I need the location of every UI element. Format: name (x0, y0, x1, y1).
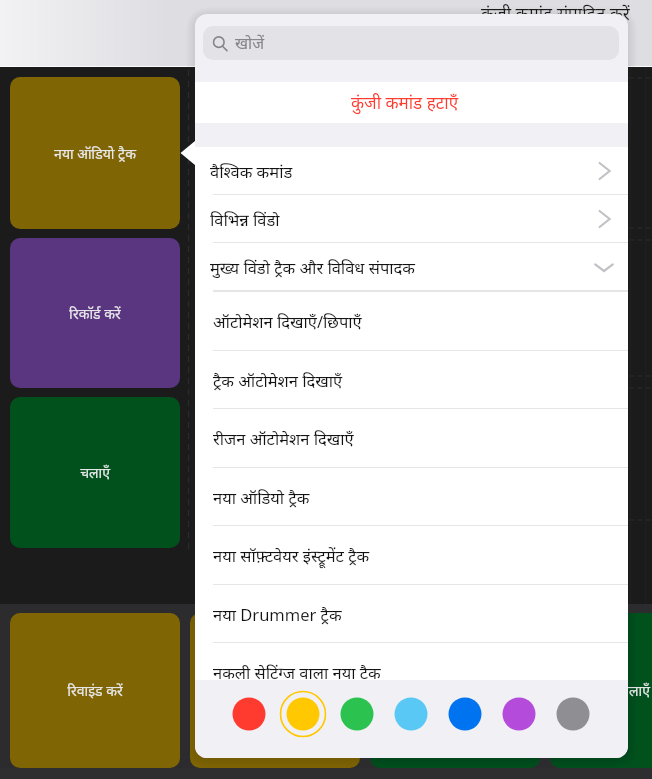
staticText: खोजें (235, 32, 265, 54)
staticText: चलाएँ (80, 463, 110, 482)
button[interactable]: नया सॉफ़्टवेयर इंस्ट्रूमेंट ट्रैक (195, 525, 628, 584)
button[interactable]: रिकॉर्ड करें (10, 238, 180, 388)
button[interactable]: खोजें (203, 26, 619, 60)
button[interactable]: ऑटोमेशन दिखाएँ/छिपाएँ (195, 291, 628, 350)
staticText: विभिन्न विंडो (210, 208, 280, 230)
button[interactable]: रिवाइंड करें (10, 613, 180, 768)
button[interactable]: नया ऑडियो ट्रैक (195, 467, 628, 526)
button[interactable]: चलाएँ (10, 397, 180, 548)
button[interactable] (190, 613, 360, 768)
button[interactable] (276, 687, 330, 741)
staticText: कुंजी कमांड हटाएँ (351, 91, 459, 114)
button[interactable]: कुंजी कमांड हटाएँ (195, 82, 628, 123)
button[interactable] (330, 687, 384, 741)
staticText: रिकॉर्ड करें (69, 304, 121, 323)
button[interactable]: नया Drummer ट्रैक (195, 584, 628, 643)
button[interactable] (492, 687, 546, 741)
button[interactable]: विभिन्न विंडो (195, 195, 628, 243)
staticText: रीजन ऑटोमेशन दिखाएँ (213, 427, 354, 449)
button[interactable] (222, 687, 276, 741)
staticText: कुंजी कमांड संपादित करें (481, 2, 630, 25)
button[interactable]: नया ऑडियो ट्रैक (10, 77, 180, 229)
staticText: वैश्विक कमांड (210, 160, 293, 182)
button[interactable]: ट्रैक ऑटोमेशन दिखाएँ (195, 350, 628, 409)
staticText: नकली सेटिंग्ज वाला नया टैक (213, 661, 381, 683)
button[interactable]: नकली सेटिंग्ज वाला नया टैक (195, 642, 628, 701)
button[interactable]: वैश्विक कमांड (195, 147, 628, 195)
staticText: ऑटोमेशन दिखाएँ/छिपाएँ (213, 310, 362, 332)
button[interactable]: चलाएँ (550, 613, 652, 768)
button[interactable]: रीजन ऑटोमेशन दिखाएँ (195, 408, 628, 467)
staticText: नया ऑडियो ट्रैक (54, 144, 136, 163)
staticText: ट्रैक ऑटोमेशन दिखाएँ (213, 369, 343, 391)
staticText: नया ऑडियो ट्रैक (213, 486, 310, 508)
button[interactable] (384, 687, 438, 741)
staticText: नया सॉफ़्टवेयर इंस्ट्रूमेंट ट्रैक (213, 544, 370, 566)
button[interactable] (546, 687, 600, 741)
staticText: मुख्य विंडो ट्रैक और विविध संपादक (210, 256, 415, 278)
staticText: चलाएँ (620, 681, 650, 700)
button[interactable] (370, 613, 540, 768)
button[interactable]: मुख्य विंडो ट्रैक और विविध संपादक (195, 243, 628, 291)
staticText: रिवाइंड करें (67, 681, 123, 700)
staticText: नया Drummer ट्रैक (213, 603, 342, 625)
button[interactable] (438, 687, 492, 741)
